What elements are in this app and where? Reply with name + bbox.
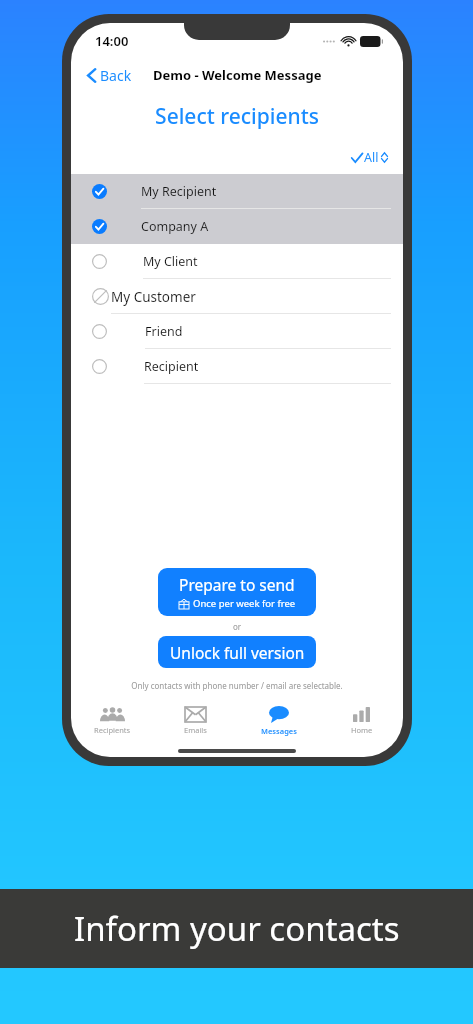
staticText: My Customer — [111, 288, 196, 306]
staticText: Friend — [145, 323, 183, 340]
staticText: Only contacts with phone number / email … — [71, 680, 403, 691]
staticText: Recipient — [144, 358, 199, 375]
other: Home — [353, 707, 370, 722]
button[interactable]: Recipients — [71, 700, 154, 742]
staticText: Company A — [141, 218, 209, 235]
staticText: Unlock full version — [170, 642, 305, 663]
staticText: Back — [100, 66, 132, 85]
button[interactable]: Messages — [237, 700, 320, 742]
other: Messages — [269, 706, 289, 723]
button[interactable]: All — [348, 147, 391, 168]
button[interactable]: My Recipient — [71, 174, 403, 209]
staticText: Inform your contacts — [74, 906, 400, 951]
button[interactable]: Unlock full version — [158, 636, 316, 668]
staticText: Home — [351, 725, 373, 735]
button[interactable]: My Customer — [71, 279, 403, 314]
button[interactable]: Company A — [71, 209, 403, 244]
staticText: Emails — [184, 725, 207, 735]
staticText: Once per week for free — [193, 597, 296, 610]
button[interactable]: Emails — [154, 700, 237, 742]
staticText: Prepare to send — [179, 574, 295, 595]
staticText: My Client — [143, 253, 198, 270]
button[interactable]: My Client — [71, 244, 403, 279]
staticText: All — [364, 149, 379, 166]
staticText: or — [233, 621, 242, 632]
other: Emails — [185, 707, 206, 722]
staticText: Demo - Welcome Message — [153, 66, 322, 84]
button[interactable]: Friend — [71, 314, 403, 349]
staticText: Messages — [261, 726, 297, 736]
button[interactable]: Prepare to send — [158, 568, 316, 616]
staticText: My Recipient — [141, 183, 217, 200]
button[interactable]: Recipient — [71, 349, 403, 384]
button[interactable]: Home — [320, 700, 403, 742]
staticText: Recipients — [94, 725, 131, 735]
staticText: Select recipients — [71, 102, 403, 131]
staticText: 14:00 — [95, 32, 129, 50]
other: Recipients — [100, 707, 125, 722]
button[interactable]: Back — [81, 62, 138, 89]
